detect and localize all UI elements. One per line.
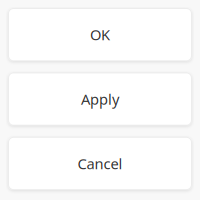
staticText: OK [90, 25, 110, 44]
button[interactable]: OK [8, 8, 192, 61]
button[interactable]: Apply [8, 72, 192, 126]
staticText: Apply [81, 89, 119, 109]
staticText: Cancel [77, 154, 122, 173]
button[interactable]: Cancel [8, 137, 192, 190]
